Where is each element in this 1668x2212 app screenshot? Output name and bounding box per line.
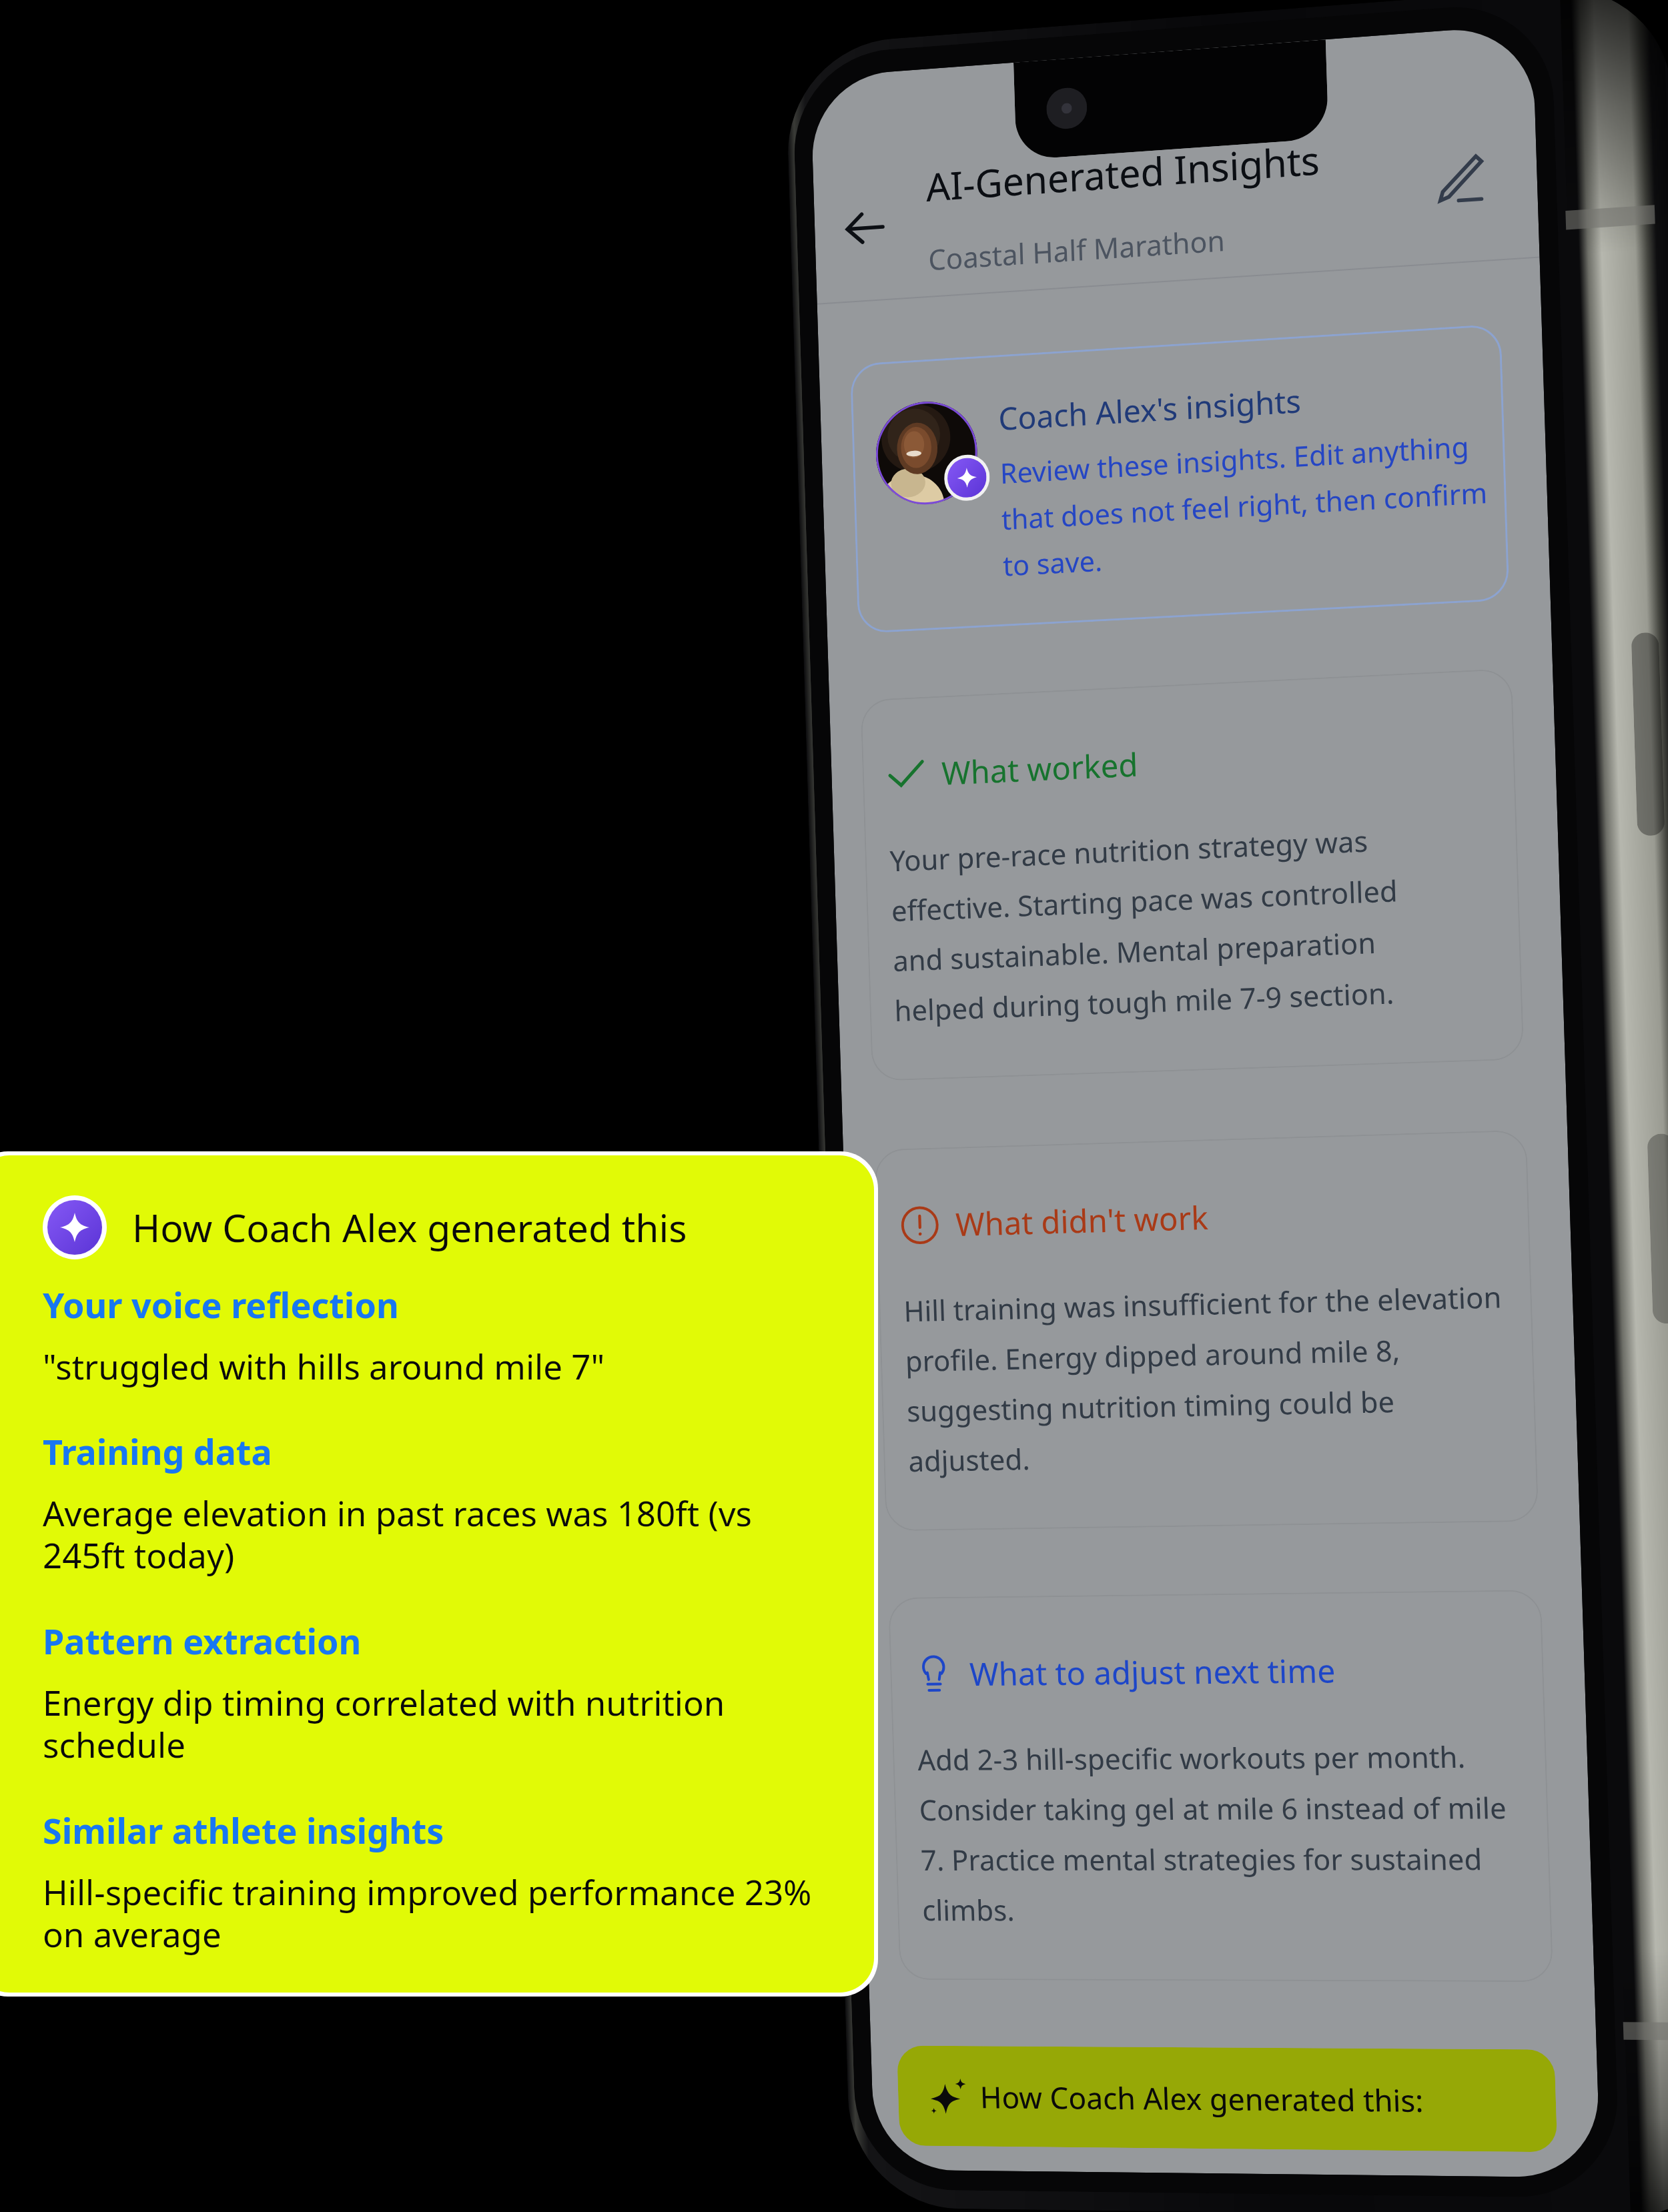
- staticText: Hill-specific training improved performa…: [43, 1868, 841, 1957]
- staticText: What didn't work: [955, 1195, 1209, 1245]
- staticText: Hill training was insufficient for the e…: [903, 1277, 1507, 1480]
- button[interactable]: How Coach Alex generated this: [43, 1195, 841, 1957]
- staticText: Add 2-3 hill-specific workouts per month…: [917, 1736, 1510, 1929]
- staticText: What worked: [941, 742, 1139, 794]
- button[interactable]: Coach Alex's insights: [874, 367, 1496, 591]
- button[interactable]: Edit: [1430, 148, 1490, 210]
- staticText: What to adjust next time: [969, 1648, 1336, 1695]
- button[interactable]: What to adjust next time: [914, 1646, 1541, 1929]
- staticText: AI-Generated Insights: [925, 133, 1321, 213]
- staticText: How Coach Alex generated this:: [979, 2076, 1424, 2121]
- staticText: Pattern extraction: [43, 1617, 362, 1664]
- staticText: How Coach Alex generated this: [132, 1201, 687, 1253]
- button[interactable]: Back: [832, 121, 1491, 285]
- button[interactable]: What didn't work: [900, 1187, 1526, 1480]
- button[interactable]: Back: [833, 194, 897, 262]
- button[interactable]: What worked: [887, 725, 1512, 1029]
- staticText: Average elevation in past races was 180f…: [43, 1490, 841, 1578]
- button[interactable]: How Coach Alex generated this:: [929, 2046, 1530, 2152]
- staticText: Your pre-race nutrition strategy was eff…: [889, 820, 1401, 1029]
- staticText: Review these insights. Edit anything tha…: [999, 426, 1490, 584]
- staticText: Coach Alex's insights: [998, 379, 1302, 440]
- staticText: Coastal Half Marathon: [928, 220, 1226, 279]
- staticText: Training data: [43, 1428, 272, 1475]
- staticText: Your voice reflection: [43, 1281, 399, 1328]
- staticText: "struggled with hills around mile 7": [43, 1343, 605, 1389]
- staticText: Similar athlete insights: [43, 1806, 444, 1854]
- staticText: Energy dip timing correlated with nutrit…: [43, 1679, 841, 1768]
